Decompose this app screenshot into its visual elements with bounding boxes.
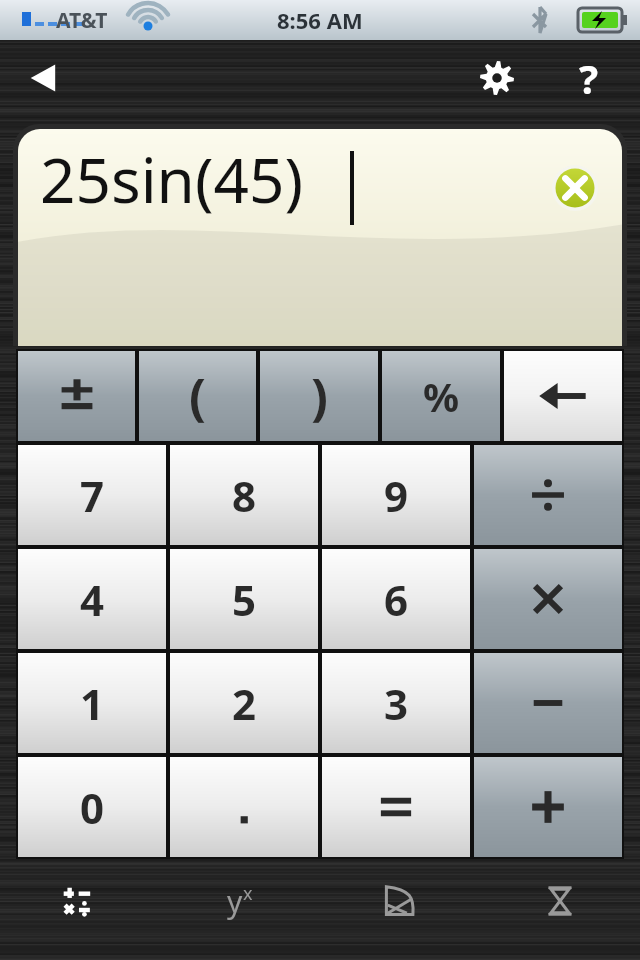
- button[interactable]: [474, 653, 622, 753]
- button[interactable]: Help: [560, 49, 618, 107]
- staticText: 8: [232, 467, 257, 524]
- button[interactable]: Geometry: [320, 870, 480, 932]
- staticText: 0: [80, 779, 105, 836]
- button[interactable]: 3: [322, 653, 470, 753]
- staticText: 1: [80, 675, 105, 732]
- staticText: 9: [384, 467, 409, 524]
- staticText: AT&T: [56, 6, 108, 35]
- staticText: %: [423, 369, 460, 423]
- staticText: y: [227, 881, 243, 922]
- staticText: 25sin(45): [40, 137, 304, 221]
- button[interactable]: ): [260, 351, 378, 441]
- button[interactable]: Time: [480, 870, 640, 932]
- staticText: (: [189, 362, 206, 430]
- button[interactable]: Clear: [552, 165, 598, 211]
- button[interactable]: 1: [18, 653, 166, 753]
- staticText: x: [243, 881, 253, 906]
- button[interactable]: 9: [322, 445, 470, 545]
- button[interactable]: 6: [322, 549, 470, 649]
- button[interactable]: 7: [18, 445, 166, 545]
- staticText: ): [311, 362, 328, 430]
- button[interactable]: [474, 445, 622, 545]
- staticText: 6: [384, 571, 409, 628]
- button[interactable]: Basic: [0, 870, 160, 932]
- staticText: 5: [232, 571, 257, 628]
- button[interactable]: Settings: [468, 49, 526, 107]
- button[interactable]: Back: [14, 47, 76, 109]
- staticText: ?: [579, 51, 599, 105]
- staticText: 4: [80, 571, 105, 628]
- button[interactable]: Power: [160, 870, 320, 932]
- staticText: 8:56 AM: [277, 5, 363, 35]
- button[interactable]: (: [139, 351, 256, 441]
- button[interactable]: [474, 757, 622, 857]
- button[interactable]: 0: [18, 757, 166, 857]
- button[interactable]: 8: [170, 445, 318, 545]
- button[interactable]: [474, 549, 622, 649]
- button[interactable]: 25sin(45): [18, 129, 622, 346]
- staticText: 7: [80, 467, 105, 524]
- staticText: 3: [384, 675, 409, 732]
- button[interactable]: Backspace: [504, 351, 622, 441]
- staticText: 2: [232, 675, 257, 732]
- button[interactable]: [18, 351, 135, 441]
- button[interactable]: 2: [170, 653, 318, 753]
- button[interactable]: [322, 757, 470, 857]
- button[interactable]: 4: [18, 549, 166, 649]
- button[interactable]: 5: [170, 549, 318, 649]
- button[interactable]: [170, 757, 318, 857]
- button[interactable]: %: [382, 351, 500, 441]
